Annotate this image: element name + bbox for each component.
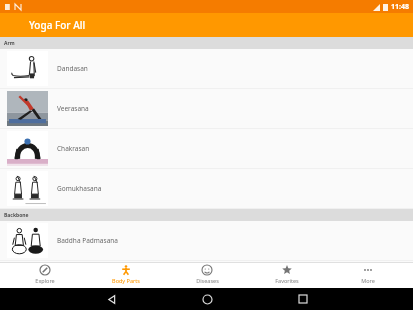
staticText: 11:48 (391, 2, 409, 12)
button[interactable]: Back (63, 288, 159, 310)
button[interactable]: Favorites (251, 262, 323, 288)
button[interactable]: Explore (9, 262, 81, 288)
staticText: Chakrasan (57, 144, 90, 153)
staticText: Favorites (275, 277, 299, 284)
button[interactable]: Dandasan (0, 49, 413, 88)
button[interactable]: Chakrasan (0, 129, 413, 168)
button[interactable]: More (332, 262, 404, 288)
button[interactable]: Body Parts (90, 262, 162, 288)
staticText: Body Parts (112, 277, 140, 284)
button[interactable]: Baddha Padmasana (0, 221, 413, 260)
staticText: Yoga For All (29, 18, 86, 32)
staticText: Diseases (196, 277, 219, 284)
button[interactable]: Gomukhasana (0, 169, 413, 208)
staticText: Explore (35, 277, 55, 284)
button[interactable]: Diseases (171, 262, 243, 288)
staticText: Backbone (4, 212, 29, 219)
staticText: Dandasan (57, 64, 88, 73)
button[interactable]: Veerasana (0, 89, 413, 128)
staticText: Arm (4, 40, 15, 47)
button[interactable]: Home (159, 288, 255, 310)
staticText: Gomukhasana (57, 184, 102, 193)
button[interactable]: Recent apps (255, 288, 351, 310)
staticText: Veerasana (57, 104, 89, 113)
staticText: Baddha Padmasana (57, 236, 118, 245)
staticText: More (361, 277, 375, 284)
